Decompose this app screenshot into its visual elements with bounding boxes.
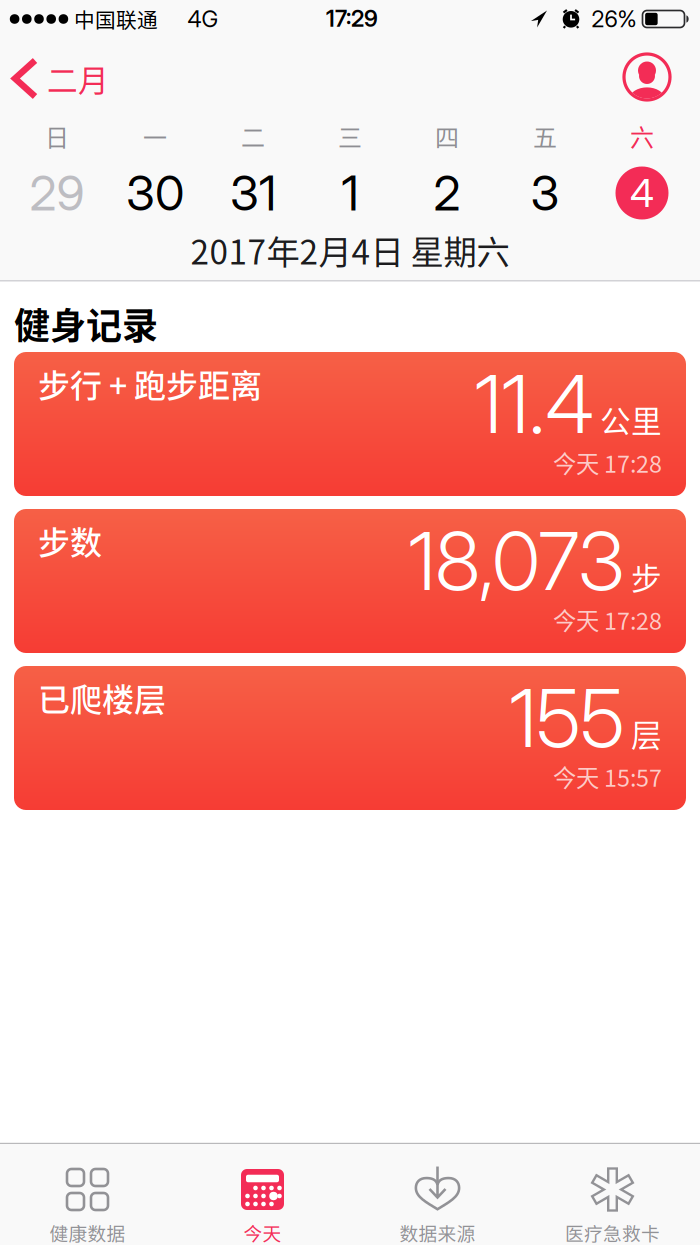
staticText: 2 xyxy=(433,164,460,222)
staticText: 26% xyxy=(591,5,636,33)
button[interactable]: 29 xyxy=(29,164,84,222)
staticText: 医疗急救卡 xyxy=(565,1219,660,1245)
staticText: 五 xyxy=(533,119,557,153)
staticText: 今天 15:57 xyxy=(553,760,662,793)
staticText: 今天 17:28 xyxy=(553,446,662,479)
staticText: 步数 xyxy=(38,517,102,564)
button[interactable]: 已爬楼层 xyxy=(14,666,686,810)
staticText: 30 xyxy=(126,164,184,222)
staticText: 1 xyxy=(341,164,358,222)
staticText: 17:29 xyxy=(326,5,378,32)
staticText: 公里 xyxy=(600,397,662,442)
staticText: 中国联通 xyxy=(74,4,158,34)
staticText: 已爬楼层 xyxy=(38,674,166,721)
staticText: 步 xyxy=(631,554,662,599)
staticText: 29 xyxy=(29,164,84,222)
staticText: 4 xyxy=(630,170,654,216)
staticText: 日 xyxy=(45,119,69,153)
button[interactable]: 2 xyxy=(433,164,460,222)
staticText: 健康数据 xyxy=(49,1219,125,1245)
button[interactable]: 4 xyxy=(615,166,668,219)
staticText: 六 xyxy=(630,119,654,153)
staticText: 今天 xyxy=(243,1219,281,1245)
staticText: 数据来源 xyxy=(399,1219,475,1245)
staticText: 今天 17:28 xyxy=(553,603,662,636)
button[interactable]: 医疗急救卡 xyxy=(525,1144,700,1245)
staticText: 健身记录 xyxy=(14,297,158,349)
staticText: 3 xyxy=(530,164,559,222)
button[interactable]: 30 xyxy=(126,164,184,222)
button[interactable]: 步行 + 跑步距离 xyxy=(14,352,686,496)
staticText: 二月 xyxy=(47,56,109,101)
staticText: 2017年2月4日 星期六 xyxy=(190,226,509,274)
button[interactable]: 二月 xyxy=(15,56,109,101)
staticText: 155 xyxy=(509,670,624,766)
staticText: 18,073 xyxy=(408,513,624,609)
button[interactable]: 1 xyxy=(341,164,358,222)
staticText: 4G xyxy=(187,5,218,33)
button[interactable]: 今天 xyxy=(175,1144,350,1245)
staticText: 一 xyxy=(143,119,167,153)
staticText: 二 xyxy=(241,119,265,153)
staticText: 31 xyxy=(230,164,276,222)
button[interactable]: 步数 xyxy=(14,509,686,653)
button[interactable]: 数据来源 xyxy=(350,1144,525,1245)
staticText: 层 xyxy=(631,711,662,756)
button[interactable]: 3 xyxy=(530,164,559,222)
button[interactable]: 健康数据 xyxy=(0,1144,175,1245)
staticText: 11.4 xyxy=(475,356,594,452)
staticText: 步行 + 跑步距离 xyxy=(38,360,262,407)
button[interactable] xyxy=(623,53,671,101)
staticText: 三 xyxy=(338,119,362,153)
button[interactable]: 31 xyxy=(230,164,276,222)
staticText: 四 xyxy=(435,119,459,153)
